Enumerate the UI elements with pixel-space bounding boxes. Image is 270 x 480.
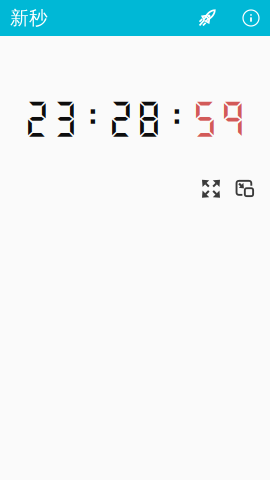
staticText: 23:28:	[23, 96, 191, 141]
button[interactable]: Boost	[189, 0, 225, 36]
staticText: 59	[191, 96, 247, 141]
button[interactable]: About	[234, 0, 268, 36]
staticText: 新秒	[10, 6, 48, 29]
button[interactable]: Picture in picture	[232, 176, 258, 202]
button[interactable]: Full screen	[198, 176, 224, 202]
